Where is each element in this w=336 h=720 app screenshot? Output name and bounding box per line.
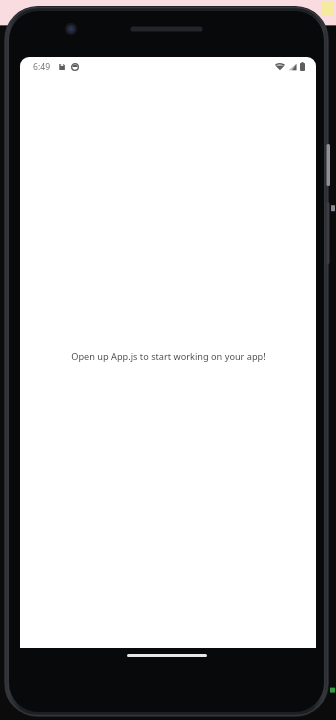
staticText: 6:49 xyxy=(33,61,51,73)
staticText: Open up App.js to start working on your … xyxy=(71,350,266,363)
other: Battery xyxy=(300,62,305,71)
button[interactable]: Open up App.js to start working on your … xyxy=(59,346,278,367)
other: Mobile signal xyxy=(288,63,297,71)
other: Wi-Fi xyxy=(275,63,285,71)
